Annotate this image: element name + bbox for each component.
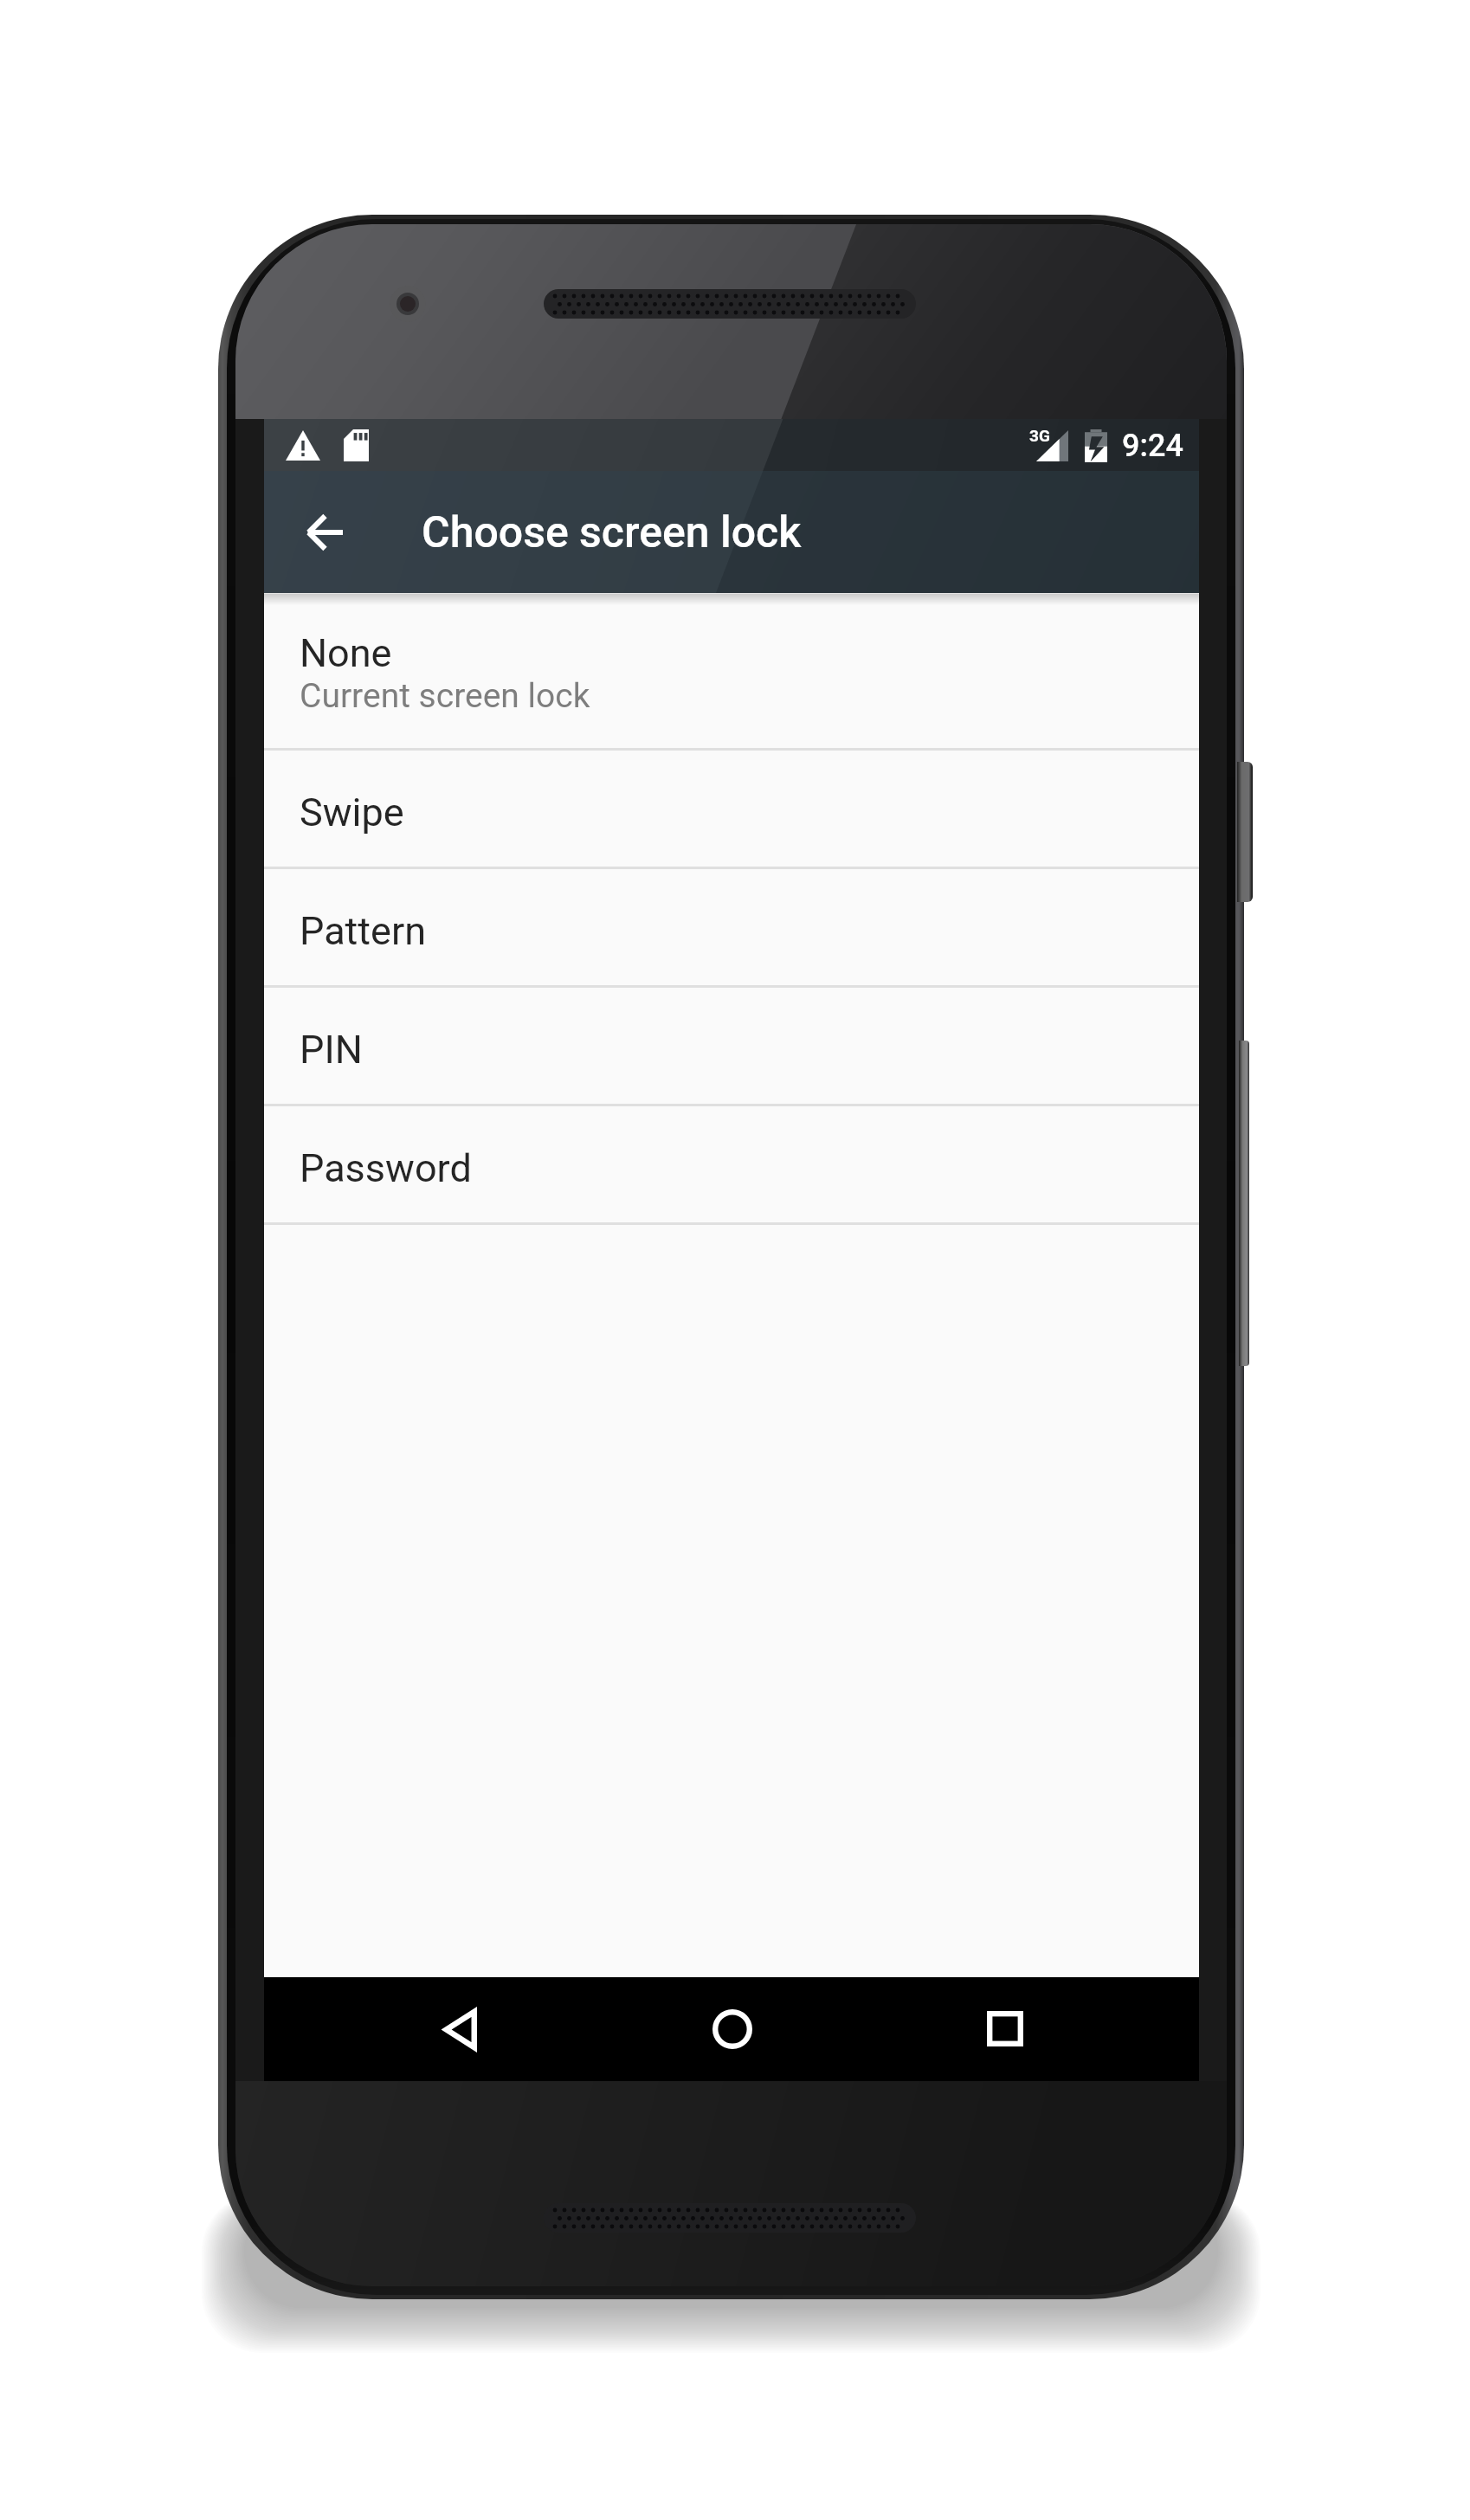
staticText: 9:24 [1122,428,1183,464]
staticText: Swipe [300,790,404,835]
staticText: 3G [1029,426,1050,445]
staticText: PIN [300,1027,363,1073]
staticText: Choose screen lock [422,507,802,558]
button[interactable]: Swipe [264,751,1199,867]
button[interactable]: Home [689,1977,776,2081]
staticText: Password [300,1145,472,1191]
button[interactable]: PIN [264,988,1199,1104]
button[interactable]: Recent apps [962,1977,1048,2081]
button[interactable]: Back [417,1977,504,2081]
button[interactable]: None [264,593,1199,748]
button[interactable]: Password [264,1106,1199,1222]
button[interactable]: Pattern [264,869,1199,985]
button[interactable]: Navigate up [281,485,377,580]
staticText: None [300,630,392,676]
staticText: Pattern [300,908,427,954]
staticText: Current screen lock [300,676,590,716]
